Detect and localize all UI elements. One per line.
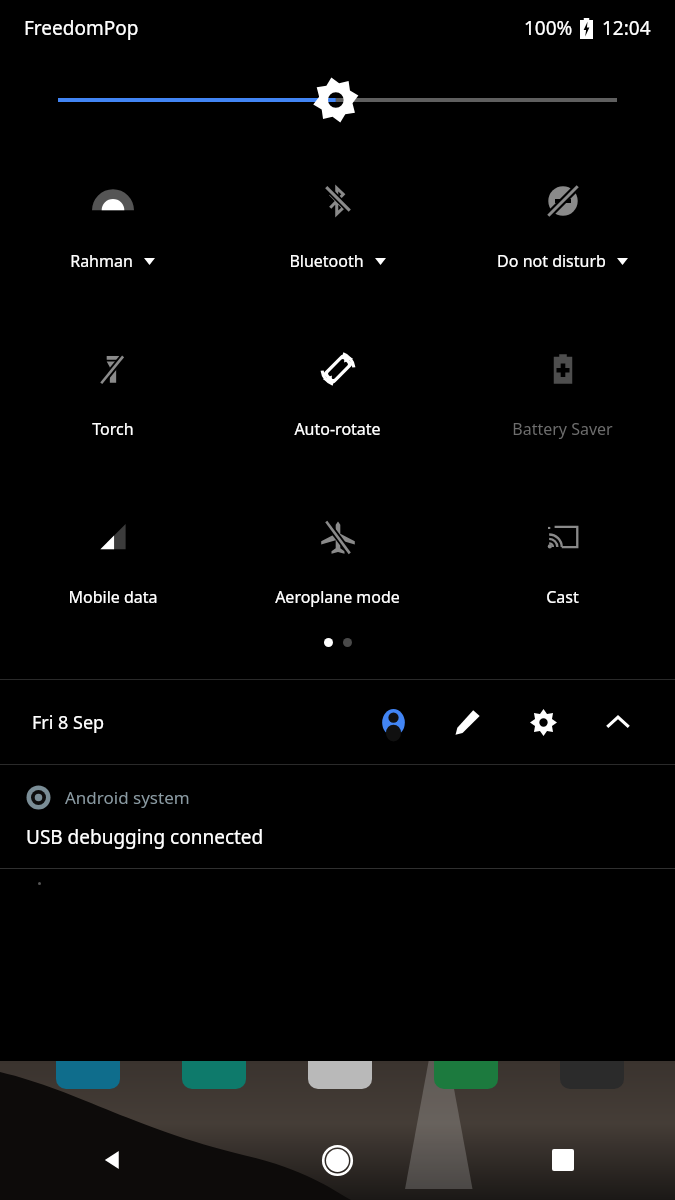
button[interactable]: Recent apps — [450, 1120, 675, 1200]
staticText: Cast — [546, 586, 579, 608]
staticText: Mobile data — [68, 586, 158, 608]
button[interactable]: Settings — [518, 697, 568, 747]
button[interactable] — [0, 76, 675, 124]
button[interactable]: Auto-rotate — [225, 344, 450, 444]
button[interactable]: Cast — [450, 512, 675, 612]
button[interactable]: Collapse — [593, 697, 643, 747]
button[interactable]: Bluetooth — [225, 176, 450, 276]
staticText: 12:04 — [602, 15, 651, 41]
button[interactable]: User — [368, 697, 418, 747]
staticText: Torch — [92, 418, 134, 440]
staticText: Rahman — [70, 250, 133, 272]
button[interactable]: Android system — [0, 765, 675, 895]
staticText: Do not disturb — [497, 250, 606, 272]
button[interactable]: Rahman — [0, 176, 225, 276]
staticText: USB debugging connected — [26, 824, 264, 850]
staticText: Fri 8 Sep — [32, 710, 105, 735]
staticText: 100% — [524, 15, 573, 41]
button[interactable]: Home — [225, 1120, 450, 1200]
staticText: Android system — [65, 786, 190, 809]
staticText: Battery Saver — [512, 418, 613, 440]
staticText: FreedomPop — [24, 15, 139, 41]
staticText: Bluetooth — [289, 250, 364, 272]
button[interactable]: Back — [0, 1120, 225, 1200]
button[interactable]: Torch — [0, 344, 225, 444]
button[interactable]: Aeroplane mode — [225, 512, 450, 612]
button[interactable]: Mobile data — [0, 512, 225, 612]
button[interactable]: Edit — [443, 697, 493, 747]
button[interactable]: Do not disturb — [450, 176, 675, 276]
staticText: Auto-rotate — [294, 418, 381, 440]
staticText: Aeroplane mode — [275, 586, 400, 608]
button[interactable]: Battery Saver — [450, 344, 675, 444]
